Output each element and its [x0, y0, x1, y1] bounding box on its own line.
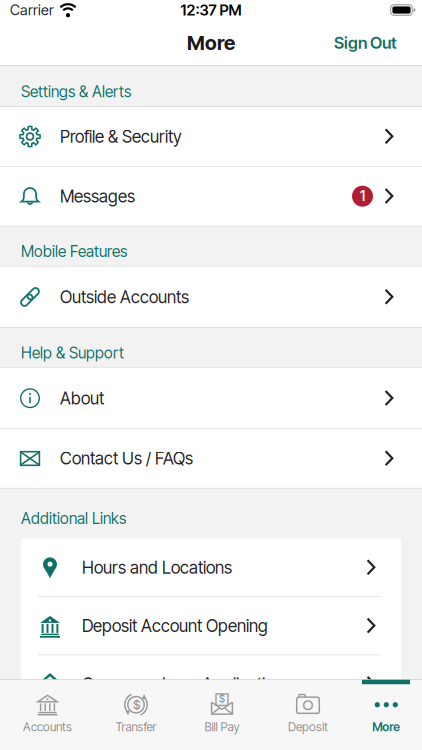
button[interactable]: $ [204, 693, 239, 734]
button[interactable]: Consumer Loan Application [21, 655, 401, 713]
staticText: Messages [60, 186, 135, 206]
staticText: About [60, 388, 104, 408]
staticText: Outside Accounts [60, 287, 189, 307]
button[interactable]: Accounts [23, 693, 72, 734]
staticText: More [372, 720, 400, 734]
button[interactable]: Outside Accounts [0, 267, 422, 327]
staticText: Contact Us / FAQs [60, 448, 193, 469]
button[interactable]: Deposit Account Opening [21, 597, 401, 655]
button[interactable]: About [0, 368, 422, 428]
staticText: $ [133, 697, 141, 712]
button[interactable]: Profile & Security [0, 107, 422, 166]
staticText: More [187, 31, 235, 55]
button[interactable]: Contact Us / FAQs [0, 429, 422, 488]
staticText: 1 [360, 188, 365, 204]
staticText: Carrier [10, 1, 54, 19]
staticText: Transfer [115, 720, 156, 734]
staticText: Deposit Account Opening [82, 615, 268, 636]
button[interactable]: More [372, 693, 400, 734]
staticText: Deposit [288, 720, 328, 734]
staticText: Bill Pay [204, 720, 239, 734]
staticText: Settings & Alerts [21, 82, 131, 101]
button[interactable]: Messages [0, 167, 422, 226]
button[interactable]: Deposit [288, 693, 328, 734]
staticText: Hours and Locations [82, 557, 232, 578]
staticText: Help & Support [21, 343, 124, 362]
button[interactable]: $ [115, 693, 156, 734]
staticText: Accounts [23, 720, 72, 734]
staticText: Profile & Security [60, 126, 182, 147]
staticText: Mobile Features [21, 242, 127, 261]
staticText: Additional Links [21, 509, 126, 528]
button[interactable]: Hours and Locations [21, 539, 401, 596]
staticText: Sign Out [334, 33, 397, 53]
staticText: 12:37 PM [180, 1, 241, 19]
staticText: $ [219, 693, 225, 705]
button[interactable]: Sign Out [334, 33, 397, 53]
staticText: Consumer Loan Application [82, 674, 283, 694]
